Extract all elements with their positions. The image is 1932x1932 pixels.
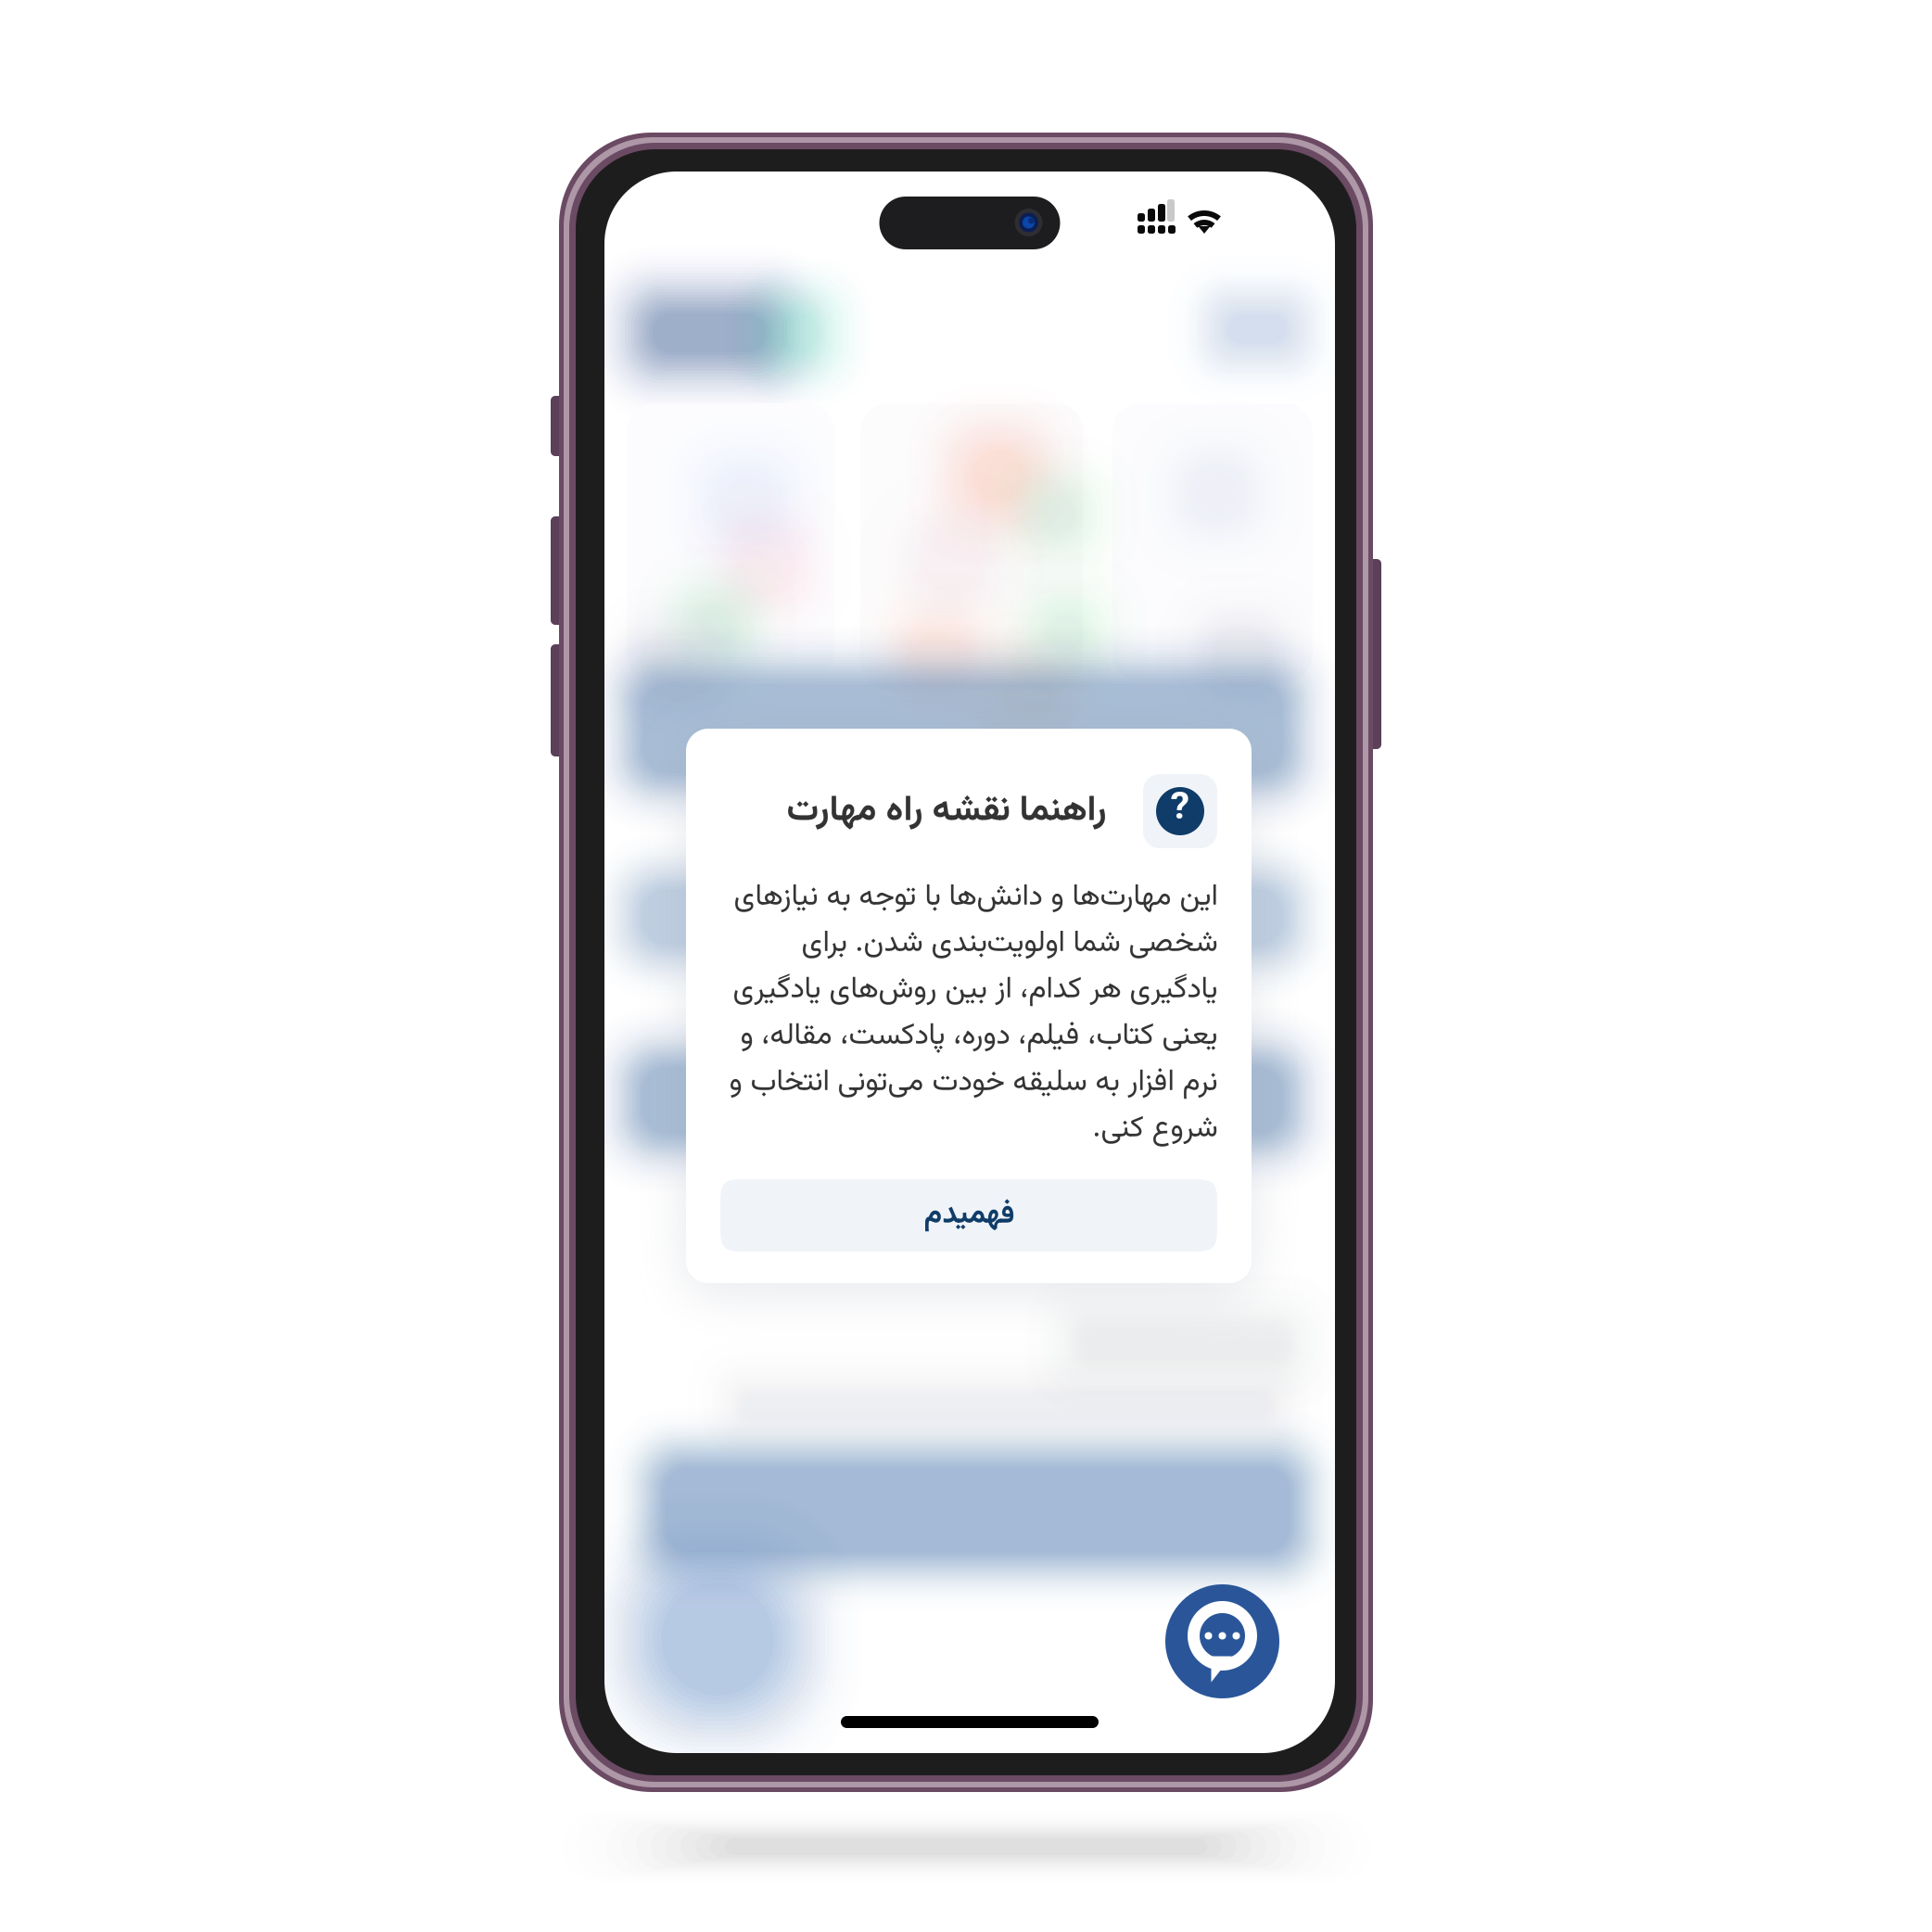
button[interactable]: فهمیدم bbox=[720, 1179, 1217, 1252]
button[interactable]: Chat bbox=[1165, 1584, 1279, 1698]
staticText: ? bbox=[1170, 779, 1190, 839]
staticText: راهنما نقشه راه مهارت bbox=[786, 783, 1106, 839]
staticText: فهمیدم bbox=[923, 1192, 1014, 1239]
staticText: این مهارت‌ها و دانش‌ها با توجه به نیازها… bbox=[729, 874, 1217, 1152]
